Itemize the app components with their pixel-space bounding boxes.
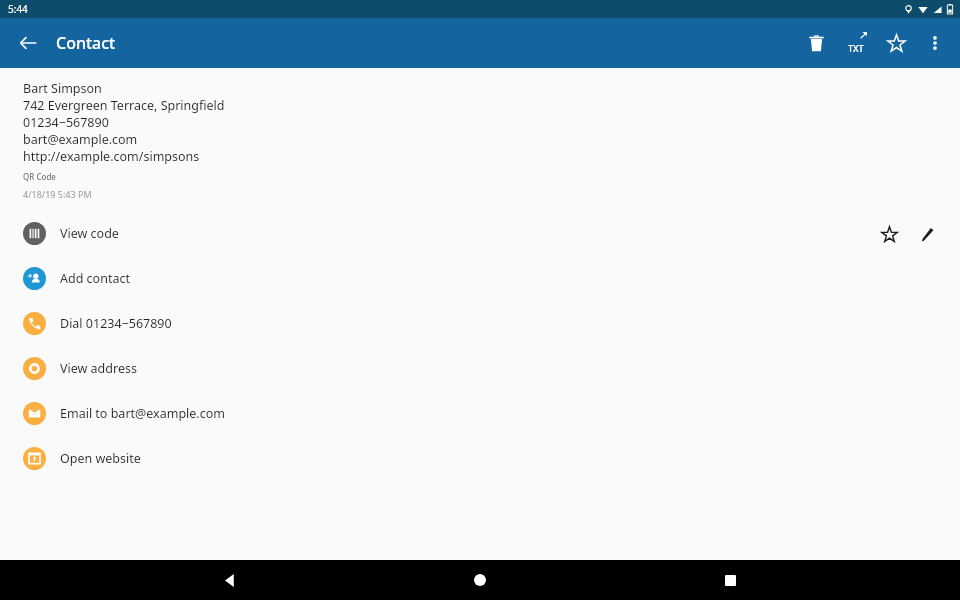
button[interactable]: Favorite [876, 23, 916, 63]
staticText: bart@example.com [23, 131, 138, 148]
button[interactable]: Dial 01234−567890 [0, 301, 960, 346]
button[interactable]: Add contact [0, 256, 960, 301]
staticText: View address [60, 360, 137, 377]
button[interactable]: Open website [0, 436, 960, 481]
staticText: 01234−567890 [23, 114, 109, 131]
staticText: TXT [848, 42, 864, 54]
button[interactable]: Back [10, 25, 46, 61]
staticText: View code [60, 225, 119, 242]
staticText: Open website [60, 450, 141, 467]
button[interactable]: Back [210, 560, 250, 600]
staticText: Email to bart@example.com [60, 405, 225, 422]
button[interactable]: Favorite [870, 215, 908, 253]
button[interactable]: Home [460, 560, 500, 600]
staticText: 4/18/19 5:43 PM [23, 188, 92, 200]
staticText: QR Code [23, 171, 56, 182]
staticText: Bart Simpson [23, 80, 102, 97]
staticText: Add contact [60, 270, 130, 287]
button[interactable]: More options [916, 24, 954, 62]
staticText: Contact [56, 32, 116, 54]
staticText: http://example.com/simpsons [23, 148, 200, 165]
button[interactable]: Edit [908, 215, 946, 253]
staticText: 742 Evergreen Terrace, Springfield [23, 97, 225, 114]
button[interactable]: Delete [796, 23, 836, 63]
button[interactable]: Export as text [836, 23, 876, 63]
button[interactable]: Recent apps [710, 560, 750, 600]
button[interactable]: View code [0, 211, 870, 256]
staticText: Dial 01234−567890 [60, 315, 172, 332]
button[interactable]: View address [0, 346, 960, 391]
button[interactable]: Email to bart@example.com [0, 391, 960, 436]
staticText: 5:44 [8, 2, 28, 16]
